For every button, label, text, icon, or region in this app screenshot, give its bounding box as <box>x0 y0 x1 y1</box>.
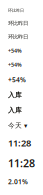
staticText: +54% <box>8 75 26 84</box>
staticText: +54% <box>8 61 22 68</box>
staticText: +54% <box>8 47 22 54</box>
staticText: 环比昨日 <box>8 33 28 40</box>
staticText: 环比昨日 <box>8 8 24 13</box>
staticText: 11:28 <box>8 156 35 170</box>
staticText: 11:28 <box>8 137 31 149</box>
staticText: 2.01% <box>8 177 28 186</box>
staticText: 环比昨日 <box>8 20 28 26</box>
staticText: 今天 ▾ <box>8 121 27 130</box>
staticText: 入库 <box>8 106 22 114</box>
staticText: 入库 <box>8 91 22 99</box>
